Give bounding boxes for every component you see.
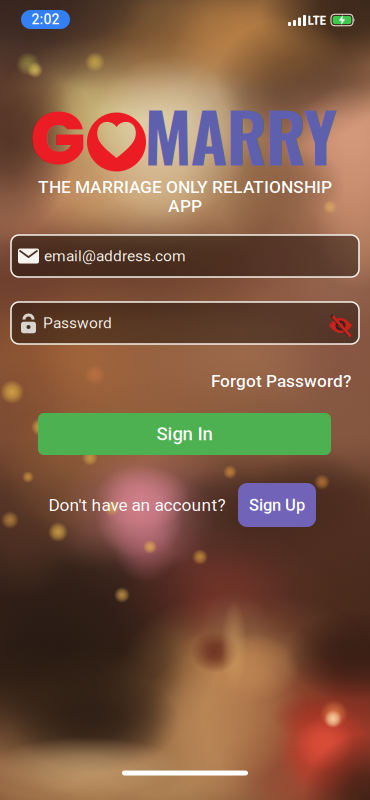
button[interactable]: Email address	[11, 235, 359, 277]
staticText: email@address.com	[44, 247, 186, 265]
button[interactable]: Forgot Password?	[211, 371, 351, 391]
staticText: G	[30, 86, 86, 190]
staticText: Sign In	[156, 423, 212, 445]
button[interactable]: Time, tap to return to call	[21, 10, 70, 29]
button[interactable]: Sign In	[38, 413, 331, 455]
staticText: Password	[43, 314, 112, 332]
staticText: LTE	[307, 12, 326, 28]
staticText: Forgot Password?	[211, 371, 351, 391]
button[interactable]: Password	[11, 302, 359, 344]
button[interactable]: Show password	[329, 314, 359, 332]
staticText: Sign Up	[249, 495, 305, 515]
staticText: 2:02	[31, 11, 59, 28]
staticText: APP	[168, 196, 202, 216]
staticText: MARRY	[144, 85, 337, 185]
staticText: THE MARRIAGE ONLY RELATIONSHIP	[38, 177, 332, 197]
button[interactable]: Sign Up	[238, 483, 316, 527]
staticText: Don't have an account?	[48, 495, 225, 515]
